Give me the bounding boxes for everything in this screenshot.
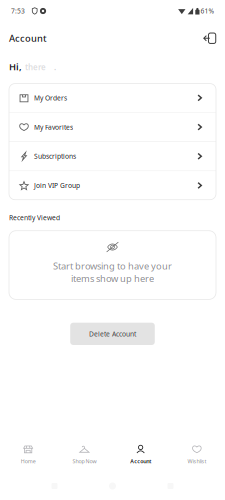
staticText: Delete Account [89, 329, 136, 338]
button[interactable]: My Favorites [9, 113, 216, 141]
button[interactable]: Home [0, 433, 56, 469]
staticText: 7:53 [11, 7, 25, 15]
button[interactable]: Join VIP Group [9, 171, 216, 200]
staticText: Shop Now [72, 458, 96, 465]
staticText: items show up here [71, 272, 154, 284]
staticText: Subscriptions [34, 152, 76, 161]
staticText: 61% [200, 7, 214, 15]
staticText: Join VIP Group [34, 181, 80, 190]
button[interactable]: Subscriptions [9, 142, 216, 170]
staticText: Home [21, 458, 36, 465]
staticText: . [54, 62, 56, 72]
staticText: Wishlist [187, 458, 206, 465]
staticText: Recently Viewed [9, 213, 60, 222]
button[interactable]: Wishlist [169, 433, 225, 469]
button[interactable]: Shop Now [56, 433, 112, 469]
staticText: My Orders [34, 93, 67, 102]
staticText: My Favorites [34, 123, 73, 131]
button[interactable]: Account [112, 433, 169, 469]
staticText: Hi, [9, 60, 22, 73]
button[interactable]: Log out [200, 29, 218, 47]
staticText: Start browsing to have your [53, 260, 172, 272]
button[interactable]: Delete Account [70, 323, 155, 345]
staticText: Account [130, 458, 151, 465]
staticText: Account [9, 32, 47, 44]
staticText: there [25, 62, 46, 72]
button[interactable]: My Orders [9, 84, 216, 112]
